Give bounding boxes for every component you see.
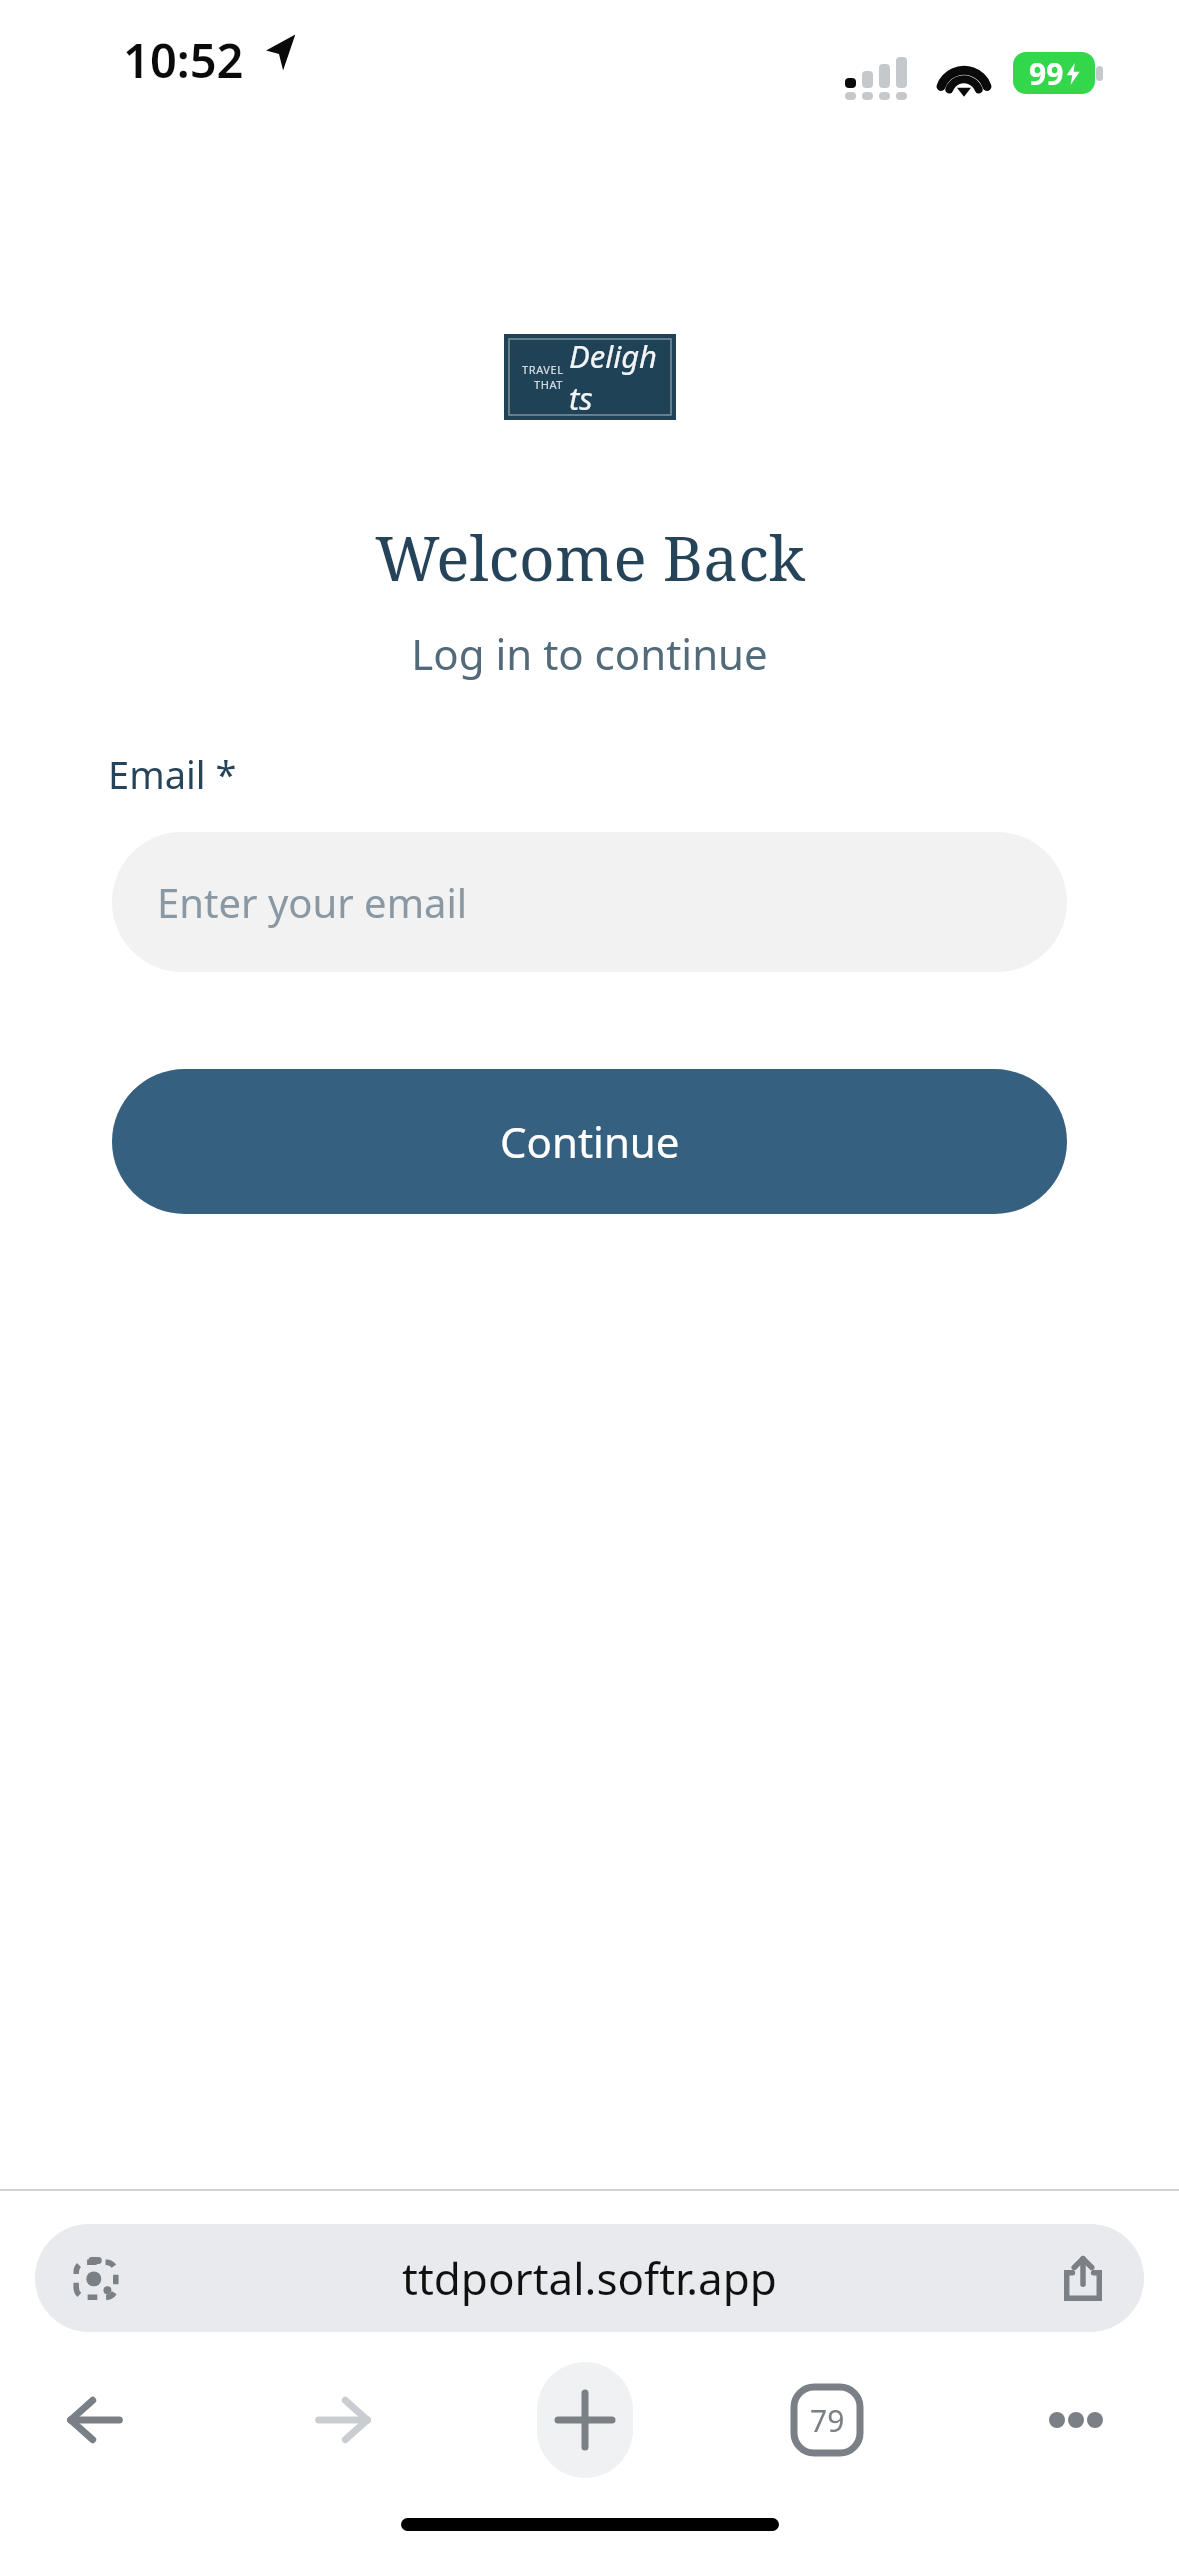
staticText: THAT — [534, 377, 564, 392]
staticText: Welcome Back — [375, 515, 805, 599]
button[interactable]: Continue — [112, 1069, 1067, 1214]
staticText: 99 — [1029, 53, 1064, 94]
button[interactable]: Share — [1052, 2247, 1114, 2309]
staticText: Enter your email — [157, 875, 468, 929]
staticText: 79 — [810, 2400, 845, 2441]
staticText: Log in to continue — [411, 625, 768, 682]
button[interactable]: Back — [40, 2362, 150, 2478]
button[interactable]: ttdportal.softr.app — [35, 2224, 1144, 2332]
button[interactable]: Enter your email — [112, 832, 1067, 972]
button[interactable]: Visual search — [65, 2247, 127, 2309]
staticText: Continue — [500, 1113, 680, 1170]
button[interactable]: Forward — [288, 2362, 398, 2478]
button[interactable]: More options — [1021, 2362, 1131, 2478]
staticText: 10:52 — [123, 28, 244, 92]
staticText: TRAVEL — [522, 362, 564, 377]
staticText: ttdportal.softr.app — [402, 2248, 777, 2308]
button[interactable]: Tabs, 79 open — [772, 2362, 882, 2478]
staticText: Delights — [569, 335, 664, 419]
staticText: Email * — [108, 748, 237, 800]
button[interactable]: New tab — [537, 2362, 633, 2478]
button[interactable]: TRAVEL — [504, 334, 676, 420]
